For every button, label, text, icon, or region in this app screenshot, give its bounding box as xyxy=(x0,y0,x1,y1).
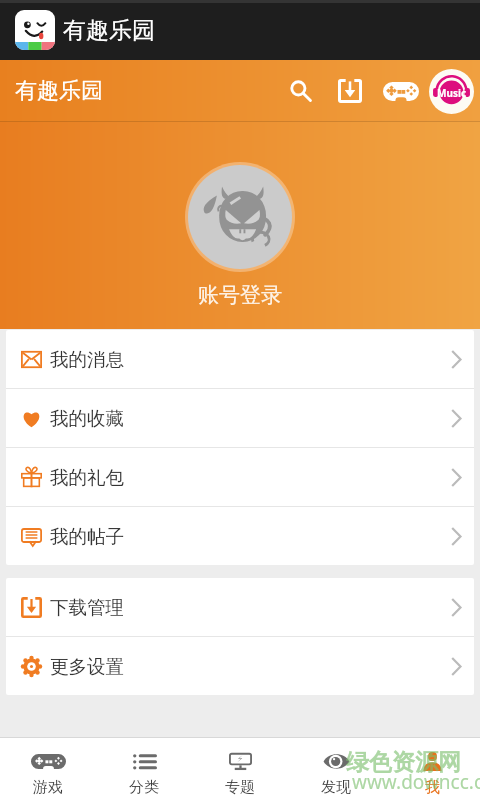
staticText: 我的消息 xyxy=(50,348,124,371)
staticText: 更多设置 xyxy=(50,655,124,678)
staticText: 绿色资源网 xyxy=(346,748,461,777)
staticText: 账号登录 xyxy=(198,282,282,308)
button[interactable]: 分类 xyxy=(96,738,192,800)
button[interactable]: 更多设置 xyxy=(6,637,474,695)
button[interactable]: Search xyxy=(269,60,320,122)
button[interactable]: 专题 xyxy=(192,738,288,800)
button[interactable]: Account login xyxy=(185,162,295,272)
staticText: 专题 xyxy=(225,778,255,797)
staticText: 发现 xyxy=(321,778,351,797)
staticText: 我的收藏 xyxy=(50,407,124,430)
button[interactable]: Downloads xyxy=(320,60,371,122)
button[interactable]: Music xyxy=(422,60,480,122)
staticText: 有趣乐园 xyxy=(15,77,103,105)
button[interactable]: 我的帖子 xyxy=(6,507,474,565)
staticText: 游戏 xyxy=(33,778,63,797)
staticText: 分类 xyxy=(129,778,159,797)
staticText: Music xyxy=(437,86,467,100)
button[interactable]: 我的消息 xyxy=(6,330,474,388)
button[interactable]: 游戏 xyxy=(0,738,96,800)
button[interactable]: 我的收藏 xyxy=(6,389,474,447)
staticText: 我的帖子 xyxy=(50,525,124,548)
button[interactable]: 我 xyxy=(384,738,480,800)
staticText: 我 xyxy=(425,778,440,797)
button[interactable]: 下载管理 xyxy=(6,578,474,636)
button[interactable]: 发现 xyxy=(288,738,384,800)
staticText: 我的礼包 xyxy=(50,466,124,489)
button[interactable]: 我的礼包 xyxy=(6,448,474,506)
staticText: 下载管理 xyxy=(50,596,124,619)
staticText: 有趣乐园 xyxy=(63,16,155,45)
button[interactable]: Games xyxy=(371,60,422,122)
staticText: www.downcc.com xyxy=(352,769,480,792)
